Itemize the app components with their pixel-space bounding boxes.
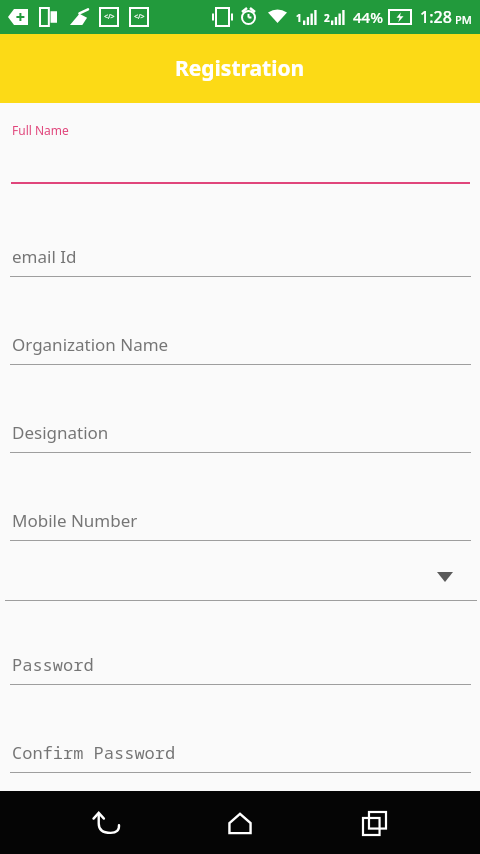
staticText: 2: [324, 11, 330, 25]
staticText: Registration: [175, 54, 305, 83]
staticText: </>: [104, 12, 115, 22]
button[interactable]: Recent apps: [346, 795, 402, 851]
staticText: 44%: [353, 7, 383, 27]
staticText: Mobile Number: [12, 509, 138, 532]
staticText: PM: [455, 12, 472, 27]
staticText: 1:28: [420, 6, 452, 28]
staticText: Full Name: [12, 122, 69, 138]
staticText: </>: [134, 12, 145, 22]
button[interactable]: email Id: [0, 236, 480, 284]
button[interactable]: Password: [0, 644, 480, 692]
button[interactable]: Select country code: [0, 556, 480, 604]
staticText: Password: [12, 653, 94, 676]
button[interactable]: Designation: [0, 412, 480, 460]
button[interactable]: Confirm Password: [0, 732, 480, 780]
button[interactable]: Full Name: [0, 110, 480, 192]
button[interactable]: Home: [212, 795, 268, 851]
staticText: Designation: [12, 421, 109, 444]
staticText: Confirm Password: [12, 741, 176, 764]
button[interactable]: Back: [78, 795, 134, 851]
button[interactable]: Organization Name: [0, 324, 480, 372]
staticText: 1: [296, 11, 302, 25]
staticText: Organization Name: [12, 333, 169, 356]
button[interactable]: Mobile Number: [0, 500, 480, 548]
staticText: email Id: [12, 245, 77, 268]
